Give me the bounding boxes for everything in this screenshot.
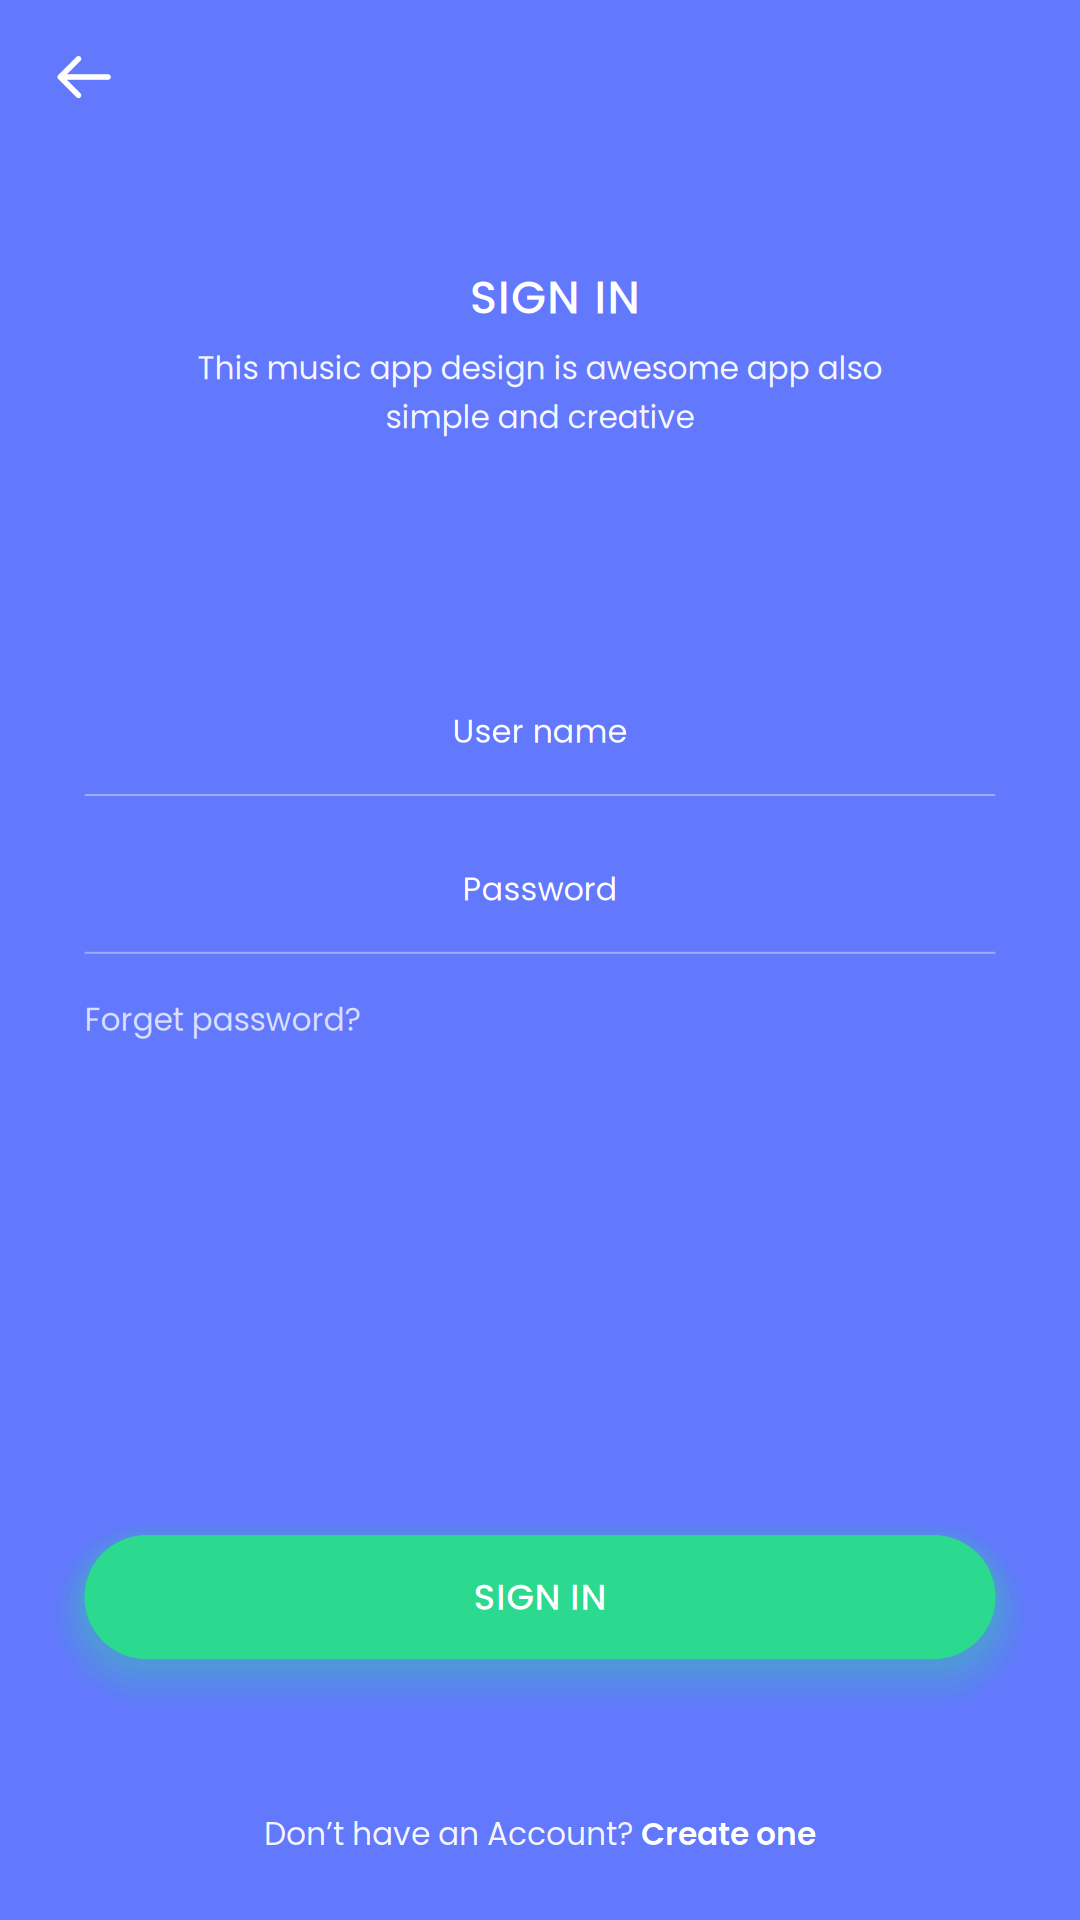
staticText: This music app design is awesome app als… [197,346,882,390]
staticText: Password [462,867,617,912]
staticText: User name [452,709,627,754]
button[interactable]: User name [84,709,995,796]
staticText: simple and creative [385,395,694,439]
button[interactable]: Password [84,867,995,954]
button[interactable]: Back [0,0,137,124]
staticText: Forget password? [84,998,360,1042]
staticText: SIGN IN [470,266,640,329]
staticText: Create one [641,1812,816,1856]
button[interactable]: Don’t have an Account? [264,1802,816,1866]
button[interactable]: SIGN IN [0,1535,1080,1659]
staticText: Don’t have an Account? [264,1812,641,1856]
button[interactable]: Forget password? [84,990,360,1050]
staticText: SIGN IN [474,1572,606,1622]
